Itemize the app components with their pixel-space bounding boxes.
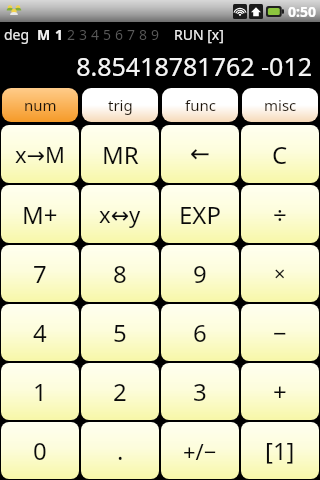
staticText: 7 [33,257,47,290]
button[interactable]: 1 [1,363,79,420]
button[interactable]: 8 [81,245,159,302]
staticText: 7 [127,25,136,44]
staticText: 3 [79,25,88,44]
staticText: MR [102,138,139,171]
staticText: EXP [179,198,221,231]
button[interactable]: trig [82,88,158,122]
staticText: x→M [15,139,66,169]
staticText: func [185,95,216,115]
button[interactable]: 0 [1,422,79,479]
button[interactable]: +/− [161,422,239,479]
staticText: M+ [22,198,58,231]
button[interactable]: func [162,88,238,122]
staticText: 6 [193,316,207,349]
button[interactable]: misc [242,88,318,122]
button[interactable]: [1] [241,422,319,479]
button[interactable]: 3 [161,363,239,420]
button[interactable]: 2 [81,363,159,420]
staticText: 4 [91,25,100,44]
button[interactable]: 9 [161,245,239,302]
staticText: × [274,260,286,287]
staticText: . [117,434,124,467]
staticText: 1 [33,375,47,408]
button[interactable]: EXP [161,185,239,243]
staticText: ÷ [273,198,287,231]
staticText: trig [108,95,133,115]
staticText: C [272,138,288,171]
button[interactable]: MR [81,125,159,183]
staticText: + [273,375,287,408]
staticText: [1] [265,434,295,467]
staticText: 3 [193,375,207,408]
staticText: 5 [103,25,112,44]
staticText: 5 [113,316,127,349]
staticText: RUN [x] [174,25,224,44]
staticText: 9 [193,257,207,290]
staticText: M [37,25,51,44]
button[interactable]: x↔y [81,185,159,243]
staticText: 4 [33,316,47,349]
button[interactable]: x→M [1,125,79,183]
button[interactable]: ÷ [241,185,319,243]
staticText: deg [4,25,30,44]
button[interactable]: num [2,88,78,122]
staticText: +/− [183,436,217,466]
button[interactable]: − [241,304,319,361]
staticText: x↔y [99,199,141,229]
staticText: 1 [55,25,64,44]
staticText: 2 [113,375,127,408]
staticText: num [24,95,57,115]
button[interactable]: 5 [81,304,159,361]
staticText: ← [190,140,211,168]
button[interactable]: × [241,245,319,302]
button[interactable]: 4 [1,304,79,361]
staticText: 8 [139,25,148,44]
button[interactable]: M+ [1,185,79,243]
staticText: 0:50 [288,2,316,21]
staticText: 8.85418781762 -012 [0,49,312,83]
staticText: misc [264,95,297,115]
button[interactable]: + [241,363,319,420]
button[interactable]: . [81,422,159,479]
button[interactable]: 6 [161,304,239,361]
staticText: 8 [113,257,127,290]
button[interactable]: C [241,125,319,183]
staticText: 9 [151,25,160,44]
staticText: 2 [67,25,76,44]
staticText: 0 [33,434,47,467]
button[interactable]: ← [161,125,239,183]
button[interactable]: 7 [1,245,79,302]
staticText: − [273,316,287,349]
staticText: 6 [115,25,124,44]
